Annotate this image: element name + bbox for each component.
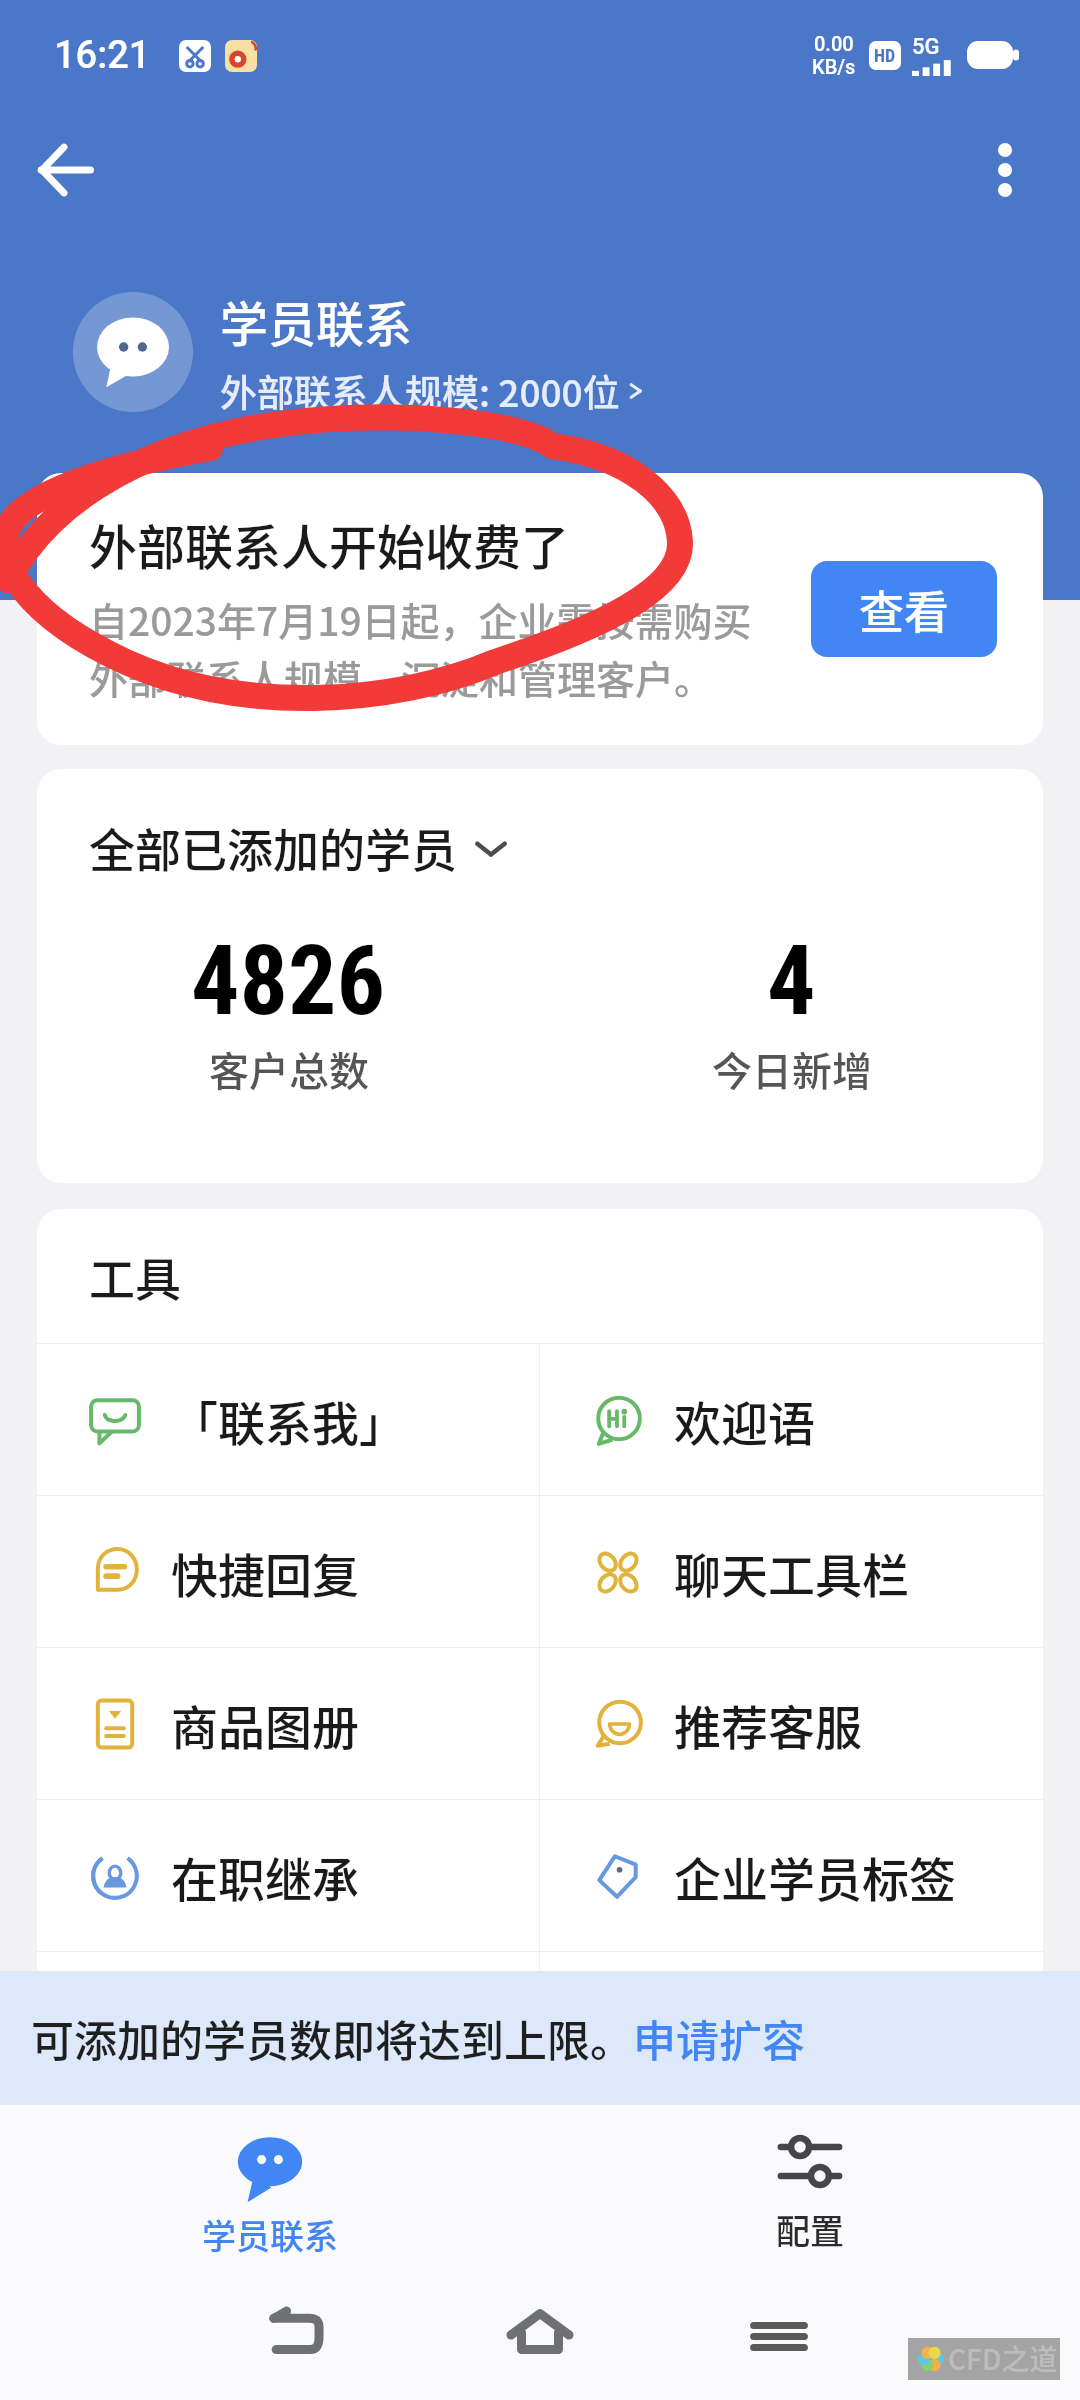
staticText: HD [874, 45, 896, 66]
button[interactable]: 聊天工具栏 [540, 1496, 1043, 1647]
button[interactable]: Home [492, 2270, 588, 2400]
staticText: 可添加的学员数即将达到上限。 [31, 2007, 633, 2069]
staticText: 全部已添加的学员 [89, 814, 457, 881]
staticText: 16:21 [54, 33, 151, 78]
staticText: 5G [912, 34, 940, 60]
button[interactable]: 配置 [540, 2105, 1080, 2270]
button[interactable]: 在职继承 [37, 1800, 539, 1951]
button[interactable]: 4826 [37, 925, 540, 1098]
staticText: 查看 [859, 577, 950, 642]
staticText: 「联系我」 [171, 1386, 406, 1454]
button[interactable]: 学员联系 [0, 2105, 540, 2270]
staticText: 企业学员标签 [674, 1842, 956, 1910]
staticText: 推荐客服 [674, 1690, 862, 1758]
button[interactable]: 快捷回复 [37, 1496, 539, 1647]
staticText: 学员联系 [202, 2210, 338, 2259]
button[interactable]: Back [249, 2270, 345, 2400]
staticText: 欢迎语 [674, 1386, 815, 1454]
button[interactable]: 推荐客服 [540, 1648, 1043, 1799]
staticText: 工具 [89, 1243, 181, 1310]
staticText: 在职继承 [171, 1842, 359, 1910]
staticText: CFD之道网 [948, 2338, 1060, 2380]
staticText: 0.00 [814, 32, 854, 55]
button[interactable]: Back [18, 123, 112, 217]
button[interactable]: 「联系我」 [37, 1344, 539, 1495]
staticText: 配置 [776, 2205, 844, 2254]
staticText: KB/s [812, 55, 856, 78]
staticText: 学员联系 [220, 286, 413, 356]
staticText: 4826 [191, 925, 386, 1038]
button[interactable]: 欢迎语 [540, 1344, 1043, 1495]
staticText: 客户总数 [209, 1040, 369, 1098]
staticText: 外部联系人规模: 2000位 [220, 364, 620, 418]
button[interactable]: More options [958, 123, 1052, 217]
staticText: 外部联系人开始收费了 [89, 509, 570, 579]
staticText: 聊天工具栏 [674, 1538, 909, 1606]
button[interactable]: 外部联系人开始收费了 [37, 473, 1043, 745]
button[interactable]: 企业学员标签 [540, 1800, 1043, 1951]
button[interactable]: 商品图册 [37, 1648, 539, 1799]
staticText: 快捷回复 [171, 1538, 359, 1606]
staticText: 商品图册 [171, 1690, 359, 1758]
button[interactable]: Recent apps [731, 2270, 827, 2400]
staticText: 自2023年7月19日起，企业需按需购买 外部联系人规模，沉淀和管理客户。 [89, 591, 752, 705]
staticText: 申请扩容 [633, 2007, 805, 2069]
button[interactable]: 可添加的学员数即将达到上限。 [0, 1971, 1080, 2105]
button[interactable]: 4 [540, 925, 1043, 1098]
button[interactable]: 全部已添加的学员 [89, 814, 509, 881]
staticText: 4 [767, 925, 816, 1038]
staticText: 今日新增 [712, 1040, 872, 1098]
button[interactable]: 查看 [811, 561, 997, 657]
